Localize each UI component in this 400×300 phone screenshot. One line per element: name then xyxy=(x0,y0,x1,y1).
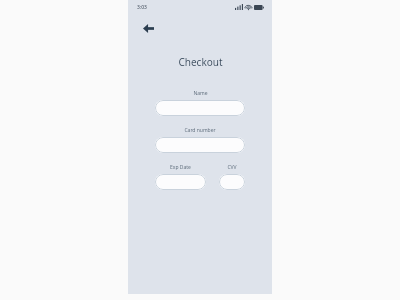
button[interactable] xyxy=(155,174,206,190)
staticText: CVV xyxy=(227,164,237,171)
button[interactable] xyxy=(155,100,245,116)
staticText: 3:03 xyxy=(137,4,147,11)
staticText: Exp Date xyxy=(170,164,191,171)
staticText: Card number xyxy=(184,127,216,134)
staticText: Name xyxy=(193,90,208,97)
staticText: Checkout xyxy=(178,55,223,69)
button[interactable] xyxy=(219,174,245,190)
button[interactable]: Back xyxy=(138,18,158,38)
button[interactable] xyxy=(155,137,245,153)
